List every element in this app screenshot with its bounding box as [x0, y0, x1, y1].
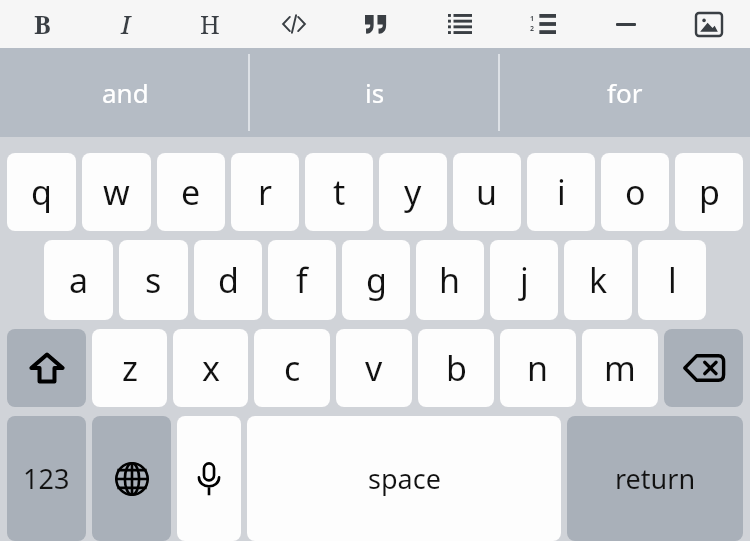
button[interactable]: i	[527, 153, 595, 231]
button[interactable]: u	[453, 153, 521, 231]
button[interactable]: I	[84, 0, 168, 48]
button[interactable]: c	[254, 329, 330, 407]
staticText: h	[439, 257, 461, 303]
staticText: for	[607, 75, 643, 110]
staticText: i	[557, 169, 566, 215]
button[interactable]: Backspace	[664, 329, 743, 407]
button[interactable]: m	[582, 329, 658, 407]
staticText: f	[296, 257, 308, 303]
button[interactable]: a	[44, 240, 113, 320]
staticText: is	[365, 75, 385, 110]
button[interactable]: is	[250, 48, 500, 137]
button[interactable]: for	[500, 48, 750, 137]
staticText: b	[446, 345, 467, 391]
staticText: 1	[530, 14, 535, 24]
button[interactable]: h	[416, 240, 484, 320]
button[interactable]: w	[82, 153, 151, 231]
button[interactable]: Insert image	[667, 0, 750, 48]
staticText: j	[520, 257, 529, 303]
button[interactable]: Quote	[335, 0, 418, 48]
button[interactable]: v	[336, 329, 412, 407]
staticText: y	[404, 169, 422, 215]
staticText: x	[202, 345, 220, 391]
button[interactable]: b	[418, 329, 494, 407]
staticText: g	[366, 257, 387, 303]
button[interactable]: g	[342, 240, 410, 320]
staticText: return	[615, 460, 696, 497]
staticText: w	[103, 169, 130, 215]
button[interactable]: and	[0, 48, 250, 137]
staticText: l	[668, 257, 677, 303]
staticText: o	[625, 169, 646, 215]
staticText: r	[258, 169, 273, 215]
button[interactable]: j	[490, 240, 558, 320]
staticText: m	[604, 345, 636, 391]
staticText: B	[34, 7, 51, 41]
button[interactable]: Shift	[7, 329, 86, 407]
staticText: v	[365, 345, 383, 391]
button[interactable]: s	[119, 240, 188, 320]
staticText: H	[200, 7, 220, 41]
button[interactable]: n	[500, 329, 576, 407]
button[interactable]: k	[564, 240, 632, 320]
button[interactable]: H	[168, 0, 252, 48]
button[interactable]: p	[675, 153, 743, 231]
button[interactable]: Horizontal rule	[584, 0, 667, 48]
button[interactable]: return	[567, 416, 743, 541]
button[interactable]: B	[0, 0, 84, 48]
button[interactable]: space	[247, 416, 561, 541]
staticText: c	[284, 345, 301, 391]
staticText: p	[699, 169, 720, 215]
button[interactable]: o	[601, 153, 669, 231]
button[interactable]: l	[638, 240, 706, 320]
staticText: u	[476, 169, 498, 215]
button[interactable]: f	[268, 240, 336, 320]
button[interactable]: Code	[252, 0, 335, 48]
button[interactable]: r	[231, 153, 299, 231]
staticText: 123	[23, 460, 70, 497]
staticText: z	[122, 345, 138, 391]
button[interactable]: y	[379, 153, 447, 231]
button[interactable]: 123	[7, 416, 86, 541]
staticText: k	[589, 257, 608, 303]
button[interactable]: Numbered list	[501, 0, 584, 48]
button[interactable]: Voice input	[177, 416, 241, 541]
button[interactable]: q	[7, 153, 76, 231]
staticText: I	[121, 7, 131, 41]
staticText: a	[69, 257, 89, 303]
staticText: q	[31, 169, 52, 215]
staticText: s	[145, 257, 162, 303]
staticText: 2	[530, 24, 535, 34]
button[interactable]: d	[194, 240, 262, 320]
button[interactable]: t	[305, 153, 373, 231]
button[interactable]: z	[92, 329, 167, 407]
staticText: e	[181, 169, 201, 215]
staticText: t	[333, 169, 346, 215]
button[interactable]: Change language	[92, 416, 171, 541]
button[interactable]: Bulleted list	[418, 0, 501, 48]
staticText: and	[102, 75, 149, 110]
staticText: d	[218, 257, 239, 303]
staticText: n	[527, 345, 549, 391]
button[interactable]: x	[173, 329, 248, 407]
button[interactable]: e	[157, 153, 225, 231]
staticText: space	[368, 460, 441, 497]
